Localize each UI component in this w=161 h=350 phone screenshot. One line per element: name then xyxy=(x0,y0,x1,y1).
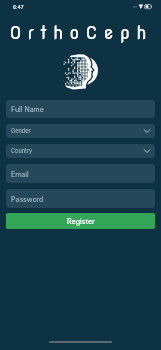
button[interactable]: Gender xyxy=(6,124,155,138)
staticText: Gender xyxy=(11,128,31,135)
button[interactable]: Full Name xyxy=(6,100,155,118)
staticText: OrthoCeph xyxy=(9,22,153,43)
button[interactable]: Country xyxy=(6,144,155,158)
staticText: Country xyxy=(11,148,33,155)
button[interactable]: Email xyxy=(6,164,155,183)
staticText: Full Name xyxy=(11,105,44,113)
button[interactable]: Register xyxy=(6,213,155,229)
staticText: Email xyxy=(11,170,29,178)
staticText: 6:47 xyxy=(13,4,24,10)
button[interactable]: Password xyxy=(6,189,155,208)
staticText: Password xyxy=(11,195,44,203)
staticText: Register xyxy=(67,217,95,226)
